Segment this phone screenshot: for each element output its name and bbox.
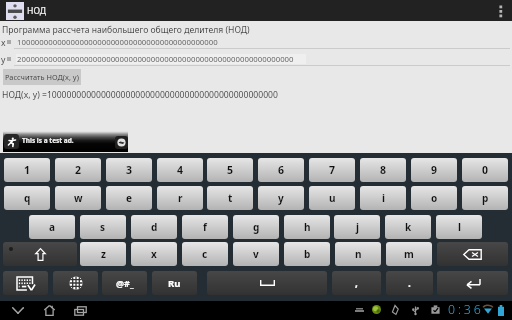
staticText: n: [355, 247, 362, 261]
button[interactable]: More options: [490, 0, 512, 21]
button[interactable]: Period: [386, 271, 433, 295]
button[interactable]: 0: [462, 158, 508, 182]
button[interactable]: Home: [37, 301, 61, 320]
button[interactable]: r: [157, 186, 203, 210]
button[interactable]: 3: [106, 158, 152, 182]
button[interactable]: 1: [4, 158, 50, 182]
staticText: g: [253, 220, 260, 234]
button[interactable]: b: [284, 242, 330, 266]
button[interactable]: w: [55, 186, 101, 210]
button[interactable]: u: [309, 186, 355, 210]
staticText: f: [203, 220, 207, 234]
staticText: .: [408, 276, 411, 290]
staticText: 7: [329, 163, 336, 177]
staticText: r: [178, 191, 183, 205]
button[interactable]: This is a test ad.: [3, 131, 128, 152]
button[interactable]: s: [80, 215, 126, 239]
button[interactable]: g: [233, 215, 279, 239]
button[interactable]: y: [258, 186, 304, 210]
button[interactable]: Comma: [332, 271, 381, 295]
staticText: i: [382, 191, 385, 205]
button[interactable]: v: [233, 242, 279, 266]
button[interactable]: t: [207, 186, 253, 210]
staticText: z: [101, 247, 106, 261]
staticText: t: [228, 191, 233, 205]
staticText: Рассчитать НОД(x, y): [5, 72, 79, 82]
staticText: НОД: [27, 5, 47, 17]
button[interactable]: i: [360, 186, 406, 210]
staticText: 0: [482, 163, 489, 177]
button[interactable]: Hide keyboard: [3, 271, 48, 295]
button[interactable]: 5: [207, 158, 253, 182]
button[interactable]: a: [29, 215, 75, 239]
staticText: НОД(x, y) =10000000000000000000000000000…: [2, 89, 278, 101]
staticText: This is a test ad.: [22, 136, 74, 145]
staticText: j: [356, 220, 359, 234]
button[interactable]: 7: [309, 158, 355, 182]
staticText: u: [329, 191, 336, 205]
staticText: q: [24, 191, 31, 205]
staticText: @#_: [116, 277, 134, 289]
staticText: Ru: [168, 277, 181, 290]
button[interactable]: Enter: [437, 271, 508, 295]
staticText: 1: [24, 163, 31, 177]
button[interactable]: n: [335, 242, 381, 266]
staticText: h: [304, 220, 311, 234]
button[interactable]: Recent apps: [68, 301, 92, 320]
staticText: x: [1, 37, 6, 49]
staticText: w: [74, 191, 83, 205]
button[interactable]: q: [4, 186, 50, 210]
staticText: y: [278, 191, 284, 205]
button[interactable]: Back: [6, 301, 30, 320]
staticText: p: [482, 191, 489, 205]
staticText: 0:36: [448, 301, 484, 318]
button[interactable]: m: [386, 242, 432, 266]
staticText: 1000000000000000000000000000000000000000…: [17, 37, 218, 48]
button[interactable]: f: [182, 215, 228, 239]
staticText: o: [431, 191, 438, 205]
staticText: 5: [227, 163, 234, 177]
button[interactable]: o: [411, 186, 457, 210]
staticText: y: [1, 54, 6, 66]
button[interactable]: x: [131, 242, 177, 266]
button[interactable]: 6: [258, 158, 304, 182]
staticText: a: [49, 220, 55, 234]
staticText: 8: [380, 163, 387, 177]
staticText: ,: [355, 276, 358, 290]
button[interactable]: p: [462, 186, 508, 210]
button[interactable]: 8: [360, 158, 406, 182]
button[interactable]: Symbols: [102, 271, 147, 295]
button[interactable]: c: [182, 242, 228, 266]
staticText: v: [253, 247, 259, 261]
staticText: k: [405, 220, 412, 234]
button[interactable]: k: [385, 215, 431, 239]
staticText: 3: [126, 163, 133, 177]
staticText: s: [100, 220, 106, 234]
button[interactable]: h: [284, 215, 330, 239]
button[interactable]: Backspace: [437, 242, 508, 266]
button[interactable]: Change language: [53, 271, 98, 295]
button[interactable]: 4: [157, 158, 203, 182]
staticText: 2: [75, 163, 82, 177]
button[interactable]: Space: [207, 271, 327, 295]
button[interactable]: Shift: [3, 242, 77, 266]
staticText: 6: [278, 163, 285, 177]
button[interactable]: e: [106, 186, 152, 210]
staticText: 4: [177, 163, 184, 177]
staticText: d: [151, 220, 158, 234]
button[interactable]: l: [436, 215, 482, 239]
button[interactable]: Рассчитать НОД(x, y): [3, 69, 81, 85]
staticText: Программа рассчета наибольшего общего де…: [2, 24, 250, 36]
staticText: b: [304, 247, 311, 261]
button[interactable]: j: [334, 215, 380, 239]
button[interactable]: d: [131, 215, 177, 239]
button[interactable]: 2: [55, 158, 101, 182]
button[interactable]: Russian layout: [152, 271, 197, 295]
button[interactable]: Ad info: [115, 136, 128, 149]
staticText: x: [151, 247, 157, 261]
staticText: 9: [431, 163, 438, 177]
button[interactable]: z: [80, 242, 126, 266]
button[interactable]: 9: [411, 158, 457, 182]
staticText: e: [126, 191, 132, 205]
staticText: l: [458, 220, 461, 234]
